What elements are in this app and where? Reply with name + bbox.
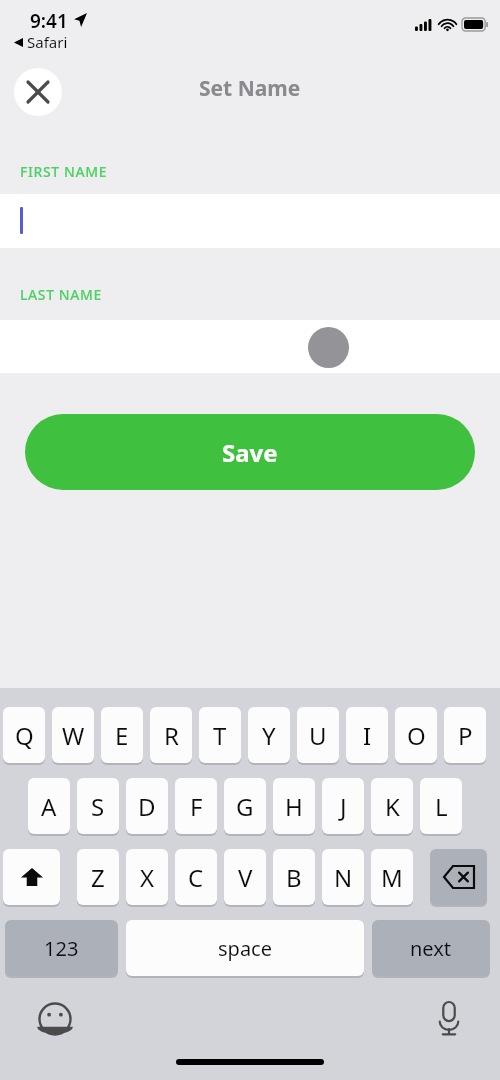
button[interactable]: H xyxy=(273,778,315,836)
button[interactable]: K xyxy=(371,778,413,836)
staticText: S xyxy=(91,790,105,823)
button[interactable]: U xyxy=(297,707,339,765)
button[interactable]: R xyxy=(150,707,192,765)
button[interactable] xyxy=(0,194,500,248)
button[interactable]: S xyxy=(77,778,119,836)
staticText: D xyxy=(138,790,156,823)
button[interactable]: Y xyxy=(248,707,290,765)
staticText: J xyxy=(340,790,347,823)
button[interactable]: Close xyxy=(14,68,62,116)
button[interactable]: space xyxy=(126,920,364,978)
button[interactable]: Dictation xyxy=(426,996,472,1042)
staticText: L xyxy=(435,790,448,823)
staticText: C xyxy=(188,861,204,894)
button[interactable]: E xyxy=(101,707,143,765)
staticText: P xyxy=(458,719,473,752)
button[interactable]: Backspace xyxy=(430,849,487,907)
button[interactable]: C xyxy=(175,849,217,907)
button[interactable]: M xyxy=(371,849,413,907)
staticText: K xyxy=(385,790,400,823)
staticText: B xyxy=(286,861,302,894)
staticText: FIRST NAME xyxy=(20,162,108,181)
staticText: space xyxy=(218,935,272,962)
staticText: I xyxy=(363,719,372,752)
button[interactable]: 123 xyxy=(5,920,118,978)
staticText: O xyxy=(407,719,426,752)
staticText: A xyxy=(41,790,57,823)
staticText: Save xyxy=(222,436,278,469)
staticText: 9:41 xyxy=(30,8,68,34)
staticText: R xyxy=(164,719,179,752)
button[interactable]: I xyxy=(346,707,388,765)
button[interactable]: T xyxy=(199,707,241,765)
staticText: next xyxy=(410,935,452,962)
button[interactable]: Z xyxy=(77,849,119,907)
button[interactable] xyxy=(0,320,500,373)
button[interactable]: D xyxy=(126,778,168,836)
staticText: Y xyxy=(262,719,276,752)
button[interactable]: O xyxy=(395,707,437,765)
button[interactable]: next xyxy=(372,920,490,978)
staticText: G xyxy=(236,790,254,823)
button[interactable]: Shift xyxy=(3,849,60,907)
staticText: H xyxy=(285,790,303,823)
staticText: M xyxy=(381,861,403,894)
staticText: F xyxy=(190,790,203,823)
staticText: E xyxy=(115,719,129,752)
button[interactable]: Save xyxy=(25,414,475,490)
button[interactable]: X xyxy=(126,849,168,907)
button[interactable]: J xyxy=(322,778,364,836)
button[interactable]: A xyxy=(28,778,70,836)
staticText: W xyxy=(62,719,85,752)
button[interactable]: W xyxy=(52,707,94,765)
staticText: Z xyxy=(91,861,105,894)
button[interactable]: V xyxy=(224,849,266,907)
button[interactable]: F xyxy=(175,778,217,836)
staticText: V xyxy=(238,861,253,894)
staticText: LAST NAME xyxy=(20,285,102,304)
button[interactable]: L xyxy=(420,778,462,836)
staticText: Set Name xyxy=(199,74,301,103)
staticText: X xyxy=(140,861,155,894)
staticText: 123 xyxy=(44,935,79,962)
button[interactable]: P xyxy=(444,707,486,765)
button[interactable]: Q xyxy=(3,707,45,765)
button[interactable]: N xyxy=(322,849,364,907)
button[interactable]: Emoji keyboard xyxy=(32,996,78,1042)
staticText: Q xyxy=(15,719,34,752)
button[interactable]: B xyxy=(273,849,315,907)
staticText: N xyxy=(334,861,353,894)
staticText: Safari xyxy=(27,32,68,52)
button[interactable]: G xyxy=(224,778,266,836)
staticText: U xyxy=(309,719,327,752)
staticText: T xyxy=(213,719,227,752)
